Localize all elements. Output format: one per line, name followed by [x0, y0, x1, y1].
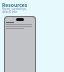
- staticText: Report, curated tips, ideas & links: [2, 7, 27, 13]
- staticText: Resources: [2, 2, 28, 9]
